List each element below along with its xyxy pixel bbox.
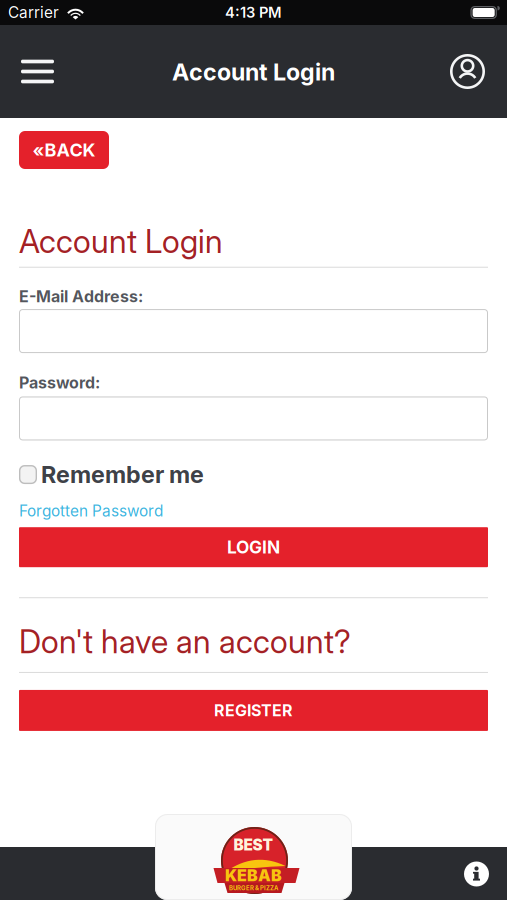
button[interactable]: LOGIN xyxy=(19,527,488,567)
staticText: BURGER & PIZZA xyxy=(229,884,278,892)
staticText: Account Login xyxy=(172,58,335,86)
staticText: LOGIN xyxy=(227,537,280,558)
staticText: KEBAB xyxy=(225,866,282,885)
staticText: REGISTER xyxy=(214,701,293,720)
staticText: Remember me xyxy=(41,460,204,489)
staticText: Account Login xyxy=(19,222,223,261)
staticText: BEST xyxy=(233,836,273,854)
staticText: Carrier xyxy=(8,3,59,22)
staticText: Password: xyxy=(19,373,100,392)
staticText: 4:13 PM xyxy=(225,4,282,21)
staticText: E-Mail Address: xyxy=(19,287,143,306)
button[interactable]: Back xyxy=(19,131,109,169)
button[interactable]: Account xyxy=(450,54,507,89)
staticText: Forgotten Password xyxy=(19,502,163,520)
staticText: Don't have an account? xyxy=(19,622,351,661)
button[interactable]: Menu xyxy=(0,60,54,83)
button[interactable]: Remember me xyxy=(19,460,204,489)
button[interactable]: Info xyxy=(464,860,507,886)
button[interactable]: Forgotten Password xyxy=(19,502,163,520)
staticText: «BACK xyxy=(32,139,95,161)
button[interactable]: REGISTER xyxy=(19,690,488,731)
